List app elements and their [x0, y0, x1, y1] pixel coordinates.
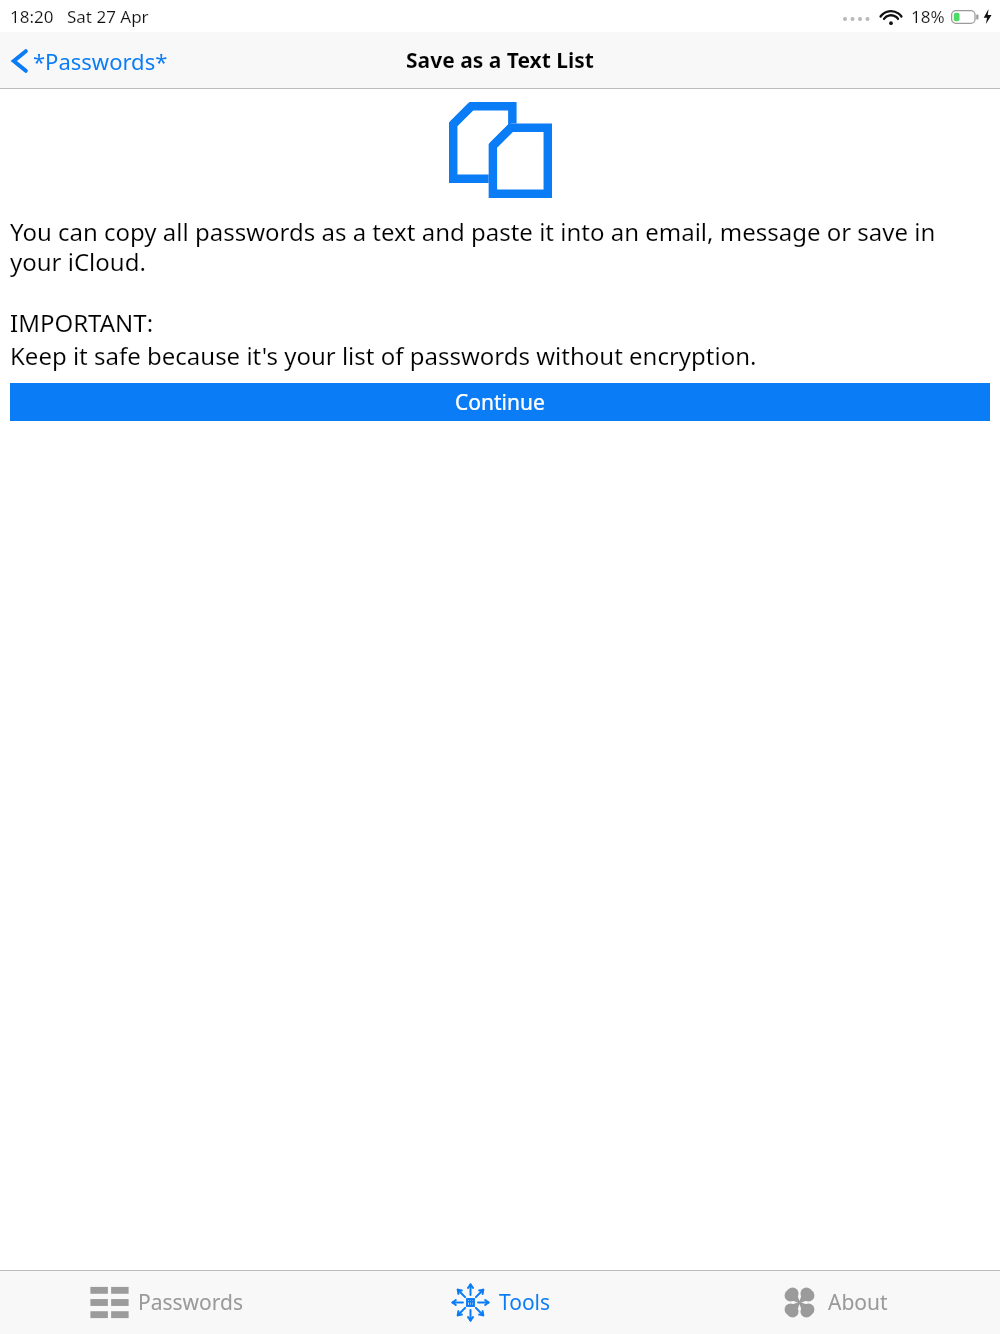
- staticText: *Passwords*: [33, 46, 168, 76]
- staticText: 18%: [911, 5, 945, 28]
- button[interactable]: Tools: [334, 1271, 667, 1334]
- staticText: Tools: [499, 1288, 551, 1317]
- button[interactable]: About: [667, 1271, 1000, 1334]
- button[interactable]: Passwords: [0, 1271, 334, 1334]
- button[interactable]: Continue: [10, 383, 990, 421]
- staticText: Passwords: [138, 1288, 244, 1317]
- other: Back: [12, 48, 27, 74]
- staticText: About: [828, 1288, 888, 1317]
- button[interactable]: Back: [0, 40, 180, 82]
- staticText: Continue: [455, 388, 545, 417]
- staticText: IMPORTANT:: [10, 306, 154, 339]
- staticText: Sat 27 Apr: [67, 5, 149, 28]
- staticText: 18:20: [10, 5, 54, 28]
- staticText: You can copy all passwords as a text and…: [10, 215, 990, 278]
- staticText: Save as a Text List: [406, 46, 594, 75]
- staticText: Keep it safe because it's your list of p…: [10, 339, 757, 372]
